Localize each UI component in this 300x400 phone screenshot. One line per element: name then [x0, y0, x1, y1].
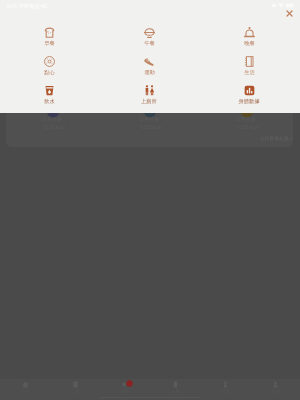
- staticText: 日累積量: [236, 116, 256, 122]
- button[interactable]: 身體數據: [224, 85, 274, 109]
- button[interactable]: Close: [281, 5, 298, 22]
- staticText: 身體數據: [238, 98, 260, 105]
- staticText: 飲水: [44, 98, 55, 105]
- button[interactable]: 飲水: [24, 85, 74, 109]
- button[interactable]: 上廁所: [124, 85, 174, 109]
- button[interactable]: 早餐: [24, 27, 74, 51]
- staticText: 9:41 中華電信 4G: [7, 2, 48, 9]
- staticText: 晚餐: [244, 40, 255, 47]
- staticText: 日累積量: [139, 116, 159, 122]
- staticText: 午餐: [144, 40, 155, 47]
- staticText: 上廁所: [141, 98, 157, 105]
- button[interactable]: 午餐: [124, 27, 174, 51]
- staticText: 運動: [144, 69, 155, 76]
- staticText: 日累積量: [42, 116, 62, 122]
- button[interactable]: 運動: [124, 56, 174, 80]
- button[interactable]: 生活: [224, 56, 274, 80]
- button[interactable]: 晚餐: [224, 27, 274, 51]
- button[interactable]: 點心: [24, 56, 74, 80]
- button[interactable]: 全日飲食紀錄 »: [260, 135, 293, 142]
- button[interactable]: 日累積量: [6, 100, 293, 147]
- button[interactable]: 運動: [100, 379, 150, 396]
- staticText: 生活: [244, 69, 255, 76]
- staticText: 早餐: [44, 40, 55, 47]
- staticText: 點心: [44, 69, 55, 76]
